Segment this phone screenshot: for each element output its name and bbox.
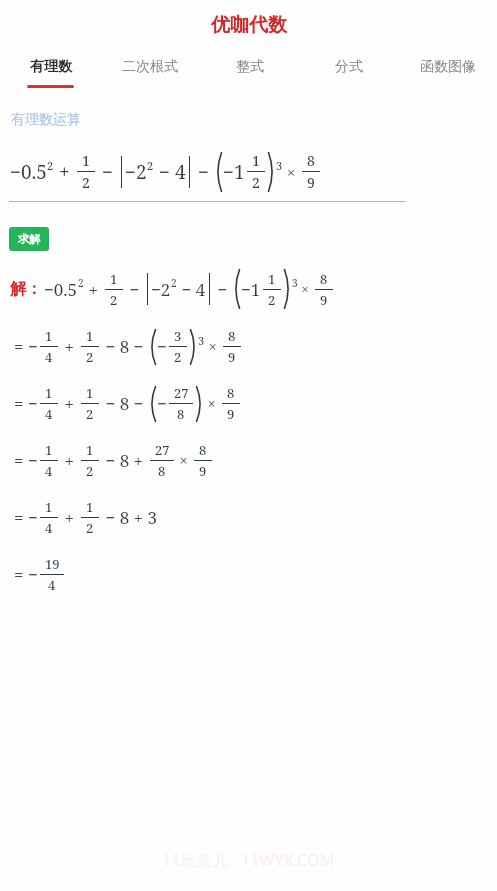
staticText: 4 [45,519,53,537]
staticText: 1 [45,384,53,402]
staticText: 4 [45,462,53,480]
staticText: 1 [45,498,53,516]
staticText: − [28,506,38,529]
staticText: 2 [86,519,94,537]
staticText: 1 [86,384,94,402]
staticText: 有理数 [30,58,72,76]
staticText: 8 [199,441,207,459]
staticText: − [28,392,38,415]
staticText: × [204,394,220,413]
staticText: 2 [47,158,54,173]
staticText: 2 [86,348,94,366]
staticText: 2 [110,291,118,309]
staticText: 1 [45,327,53,345]
staticText: 9 [320,291,328,309]
staticText: 整式 [236,58,264,76]
staticText: 3 [276,158,283,173]
staticText: − 4 [177,278,206,301]
staticText: −0.5 [44,278,78,301]
button[interactable]: 求解 [9,227,49,251]
staticText: 1 [82,151,90,170]
staticText: × [176,451,192,470]
staticText: 1 [45,441,53,459]
staticText: = [14,335,28,358]
staticText: 二次根式 [122,58,178,76]
staticText: + [54,159,75,185]
staticText: − [213,278,232,301]
staticText: 8 [228,327,236,345]
staticText: 3 [174,327,182,345]
staticText: 2 [86,405,94,423]
staticText: × [283,162,300,182]
staticText: + [60,335,79,358]
staticText: 函数图像 [420,58,476,76]
staticText: = [14,563,28,586]
staticText: = [14,449,28,472]
staticText: − [157,392,167,415]
staticText: − 4 [154,159,186,185]
staticText: 有理数运算 [11,111,81,129]
staticText: − [28,563,38,586]
staticText: −1 [241,278,261,301]
staticText: −2 [151,278,171,301]
staticText: 9 [199,462,207,480]
staticText: −2 [125,159,147,185]
staticText: 分式 [335,58,363,76]
staticText: 4 [48,576,56,594]
staticText: 2 [268,291,276,309]
staticText: + [84,278,103,301]
staticText: 11玩意儿 · 11WYX.COM [162,849,335,871]
staticText: 8 [177,405,185,423]
staticText: 2 [252,173,260,192]
staticText: + [60,392,79,415]
staticText: − [193,159,214,185]
button[interactable]: 有理数 [0,50,100,98]
staticText: 8 [307,151,315,170]
staticText: 8 [158,462,166,480]
staticText: 2 [86,462,94,480]
staticText: − [28,449,38,472]
staticText: − 8 − [101,392,148,415]
staticText: 2 [174,348,182,366]
staticText: × [205,337,221,356]
staticText: −0.5 [10,159,47,185]
staticText: 27 [174,384,189,402]
button[interactable]: 二次根式 [100,50,200,98]
staticText: × [298,280,313,298]
staticText: = [14,506,28,529]
staticText: − [28,335,38,358]
staticText: − [125,278,144,301]
staticText: 9 [307,173,315,192]
staticText: 1 [86,498,94,516]
staticText: − 8 − [101,335,148,358]
staticText: 8 [320,270,328,288]
staticText: 2 [78,276,84,290]
button[interactable]: 分式 [299,50,398,98]
staticText: 优咖代数 [211,13,287,37]
staticText: 9 [228,348,236,366]
staticText: − [97,159,118,185]
staticText: 3 [292,276,298,290]
staticText: 1 [86,327,94,345]
staticText: 3 [198,333,205,348]
staticText: 8 [227,384,235,402]
staticText: − 8 + [101,449,148,472]
staticText: 2 [82,173,90,192]
staticText: 1 [110,270,118,288]
button[interactable]: 函数图像 [398,50,497,98]
staticText: 4 [45,348,53,366]
staticText: −1 [223,159,245,185]
staticText: 2 [171,276,177,290]
staticText: 解： [10,279,42,299]
button[interactable]: 整式 [200,50,299,98]
staticText: − [157,335,167,358]
staticText: 9 [227,405,235,423]
staticText: 1 [252,151,260,170]
staticText: + [60,449,79,472]
staticText: 1 [268,270,276,288]
staticText: = [14,392,28,415]
staticText: 求解 [18,232,40,246]
staticText: 4 [45,405,53,423]
staticText: 1 [86,441,94,459]
staticText: 2 [147,158,154,173]
